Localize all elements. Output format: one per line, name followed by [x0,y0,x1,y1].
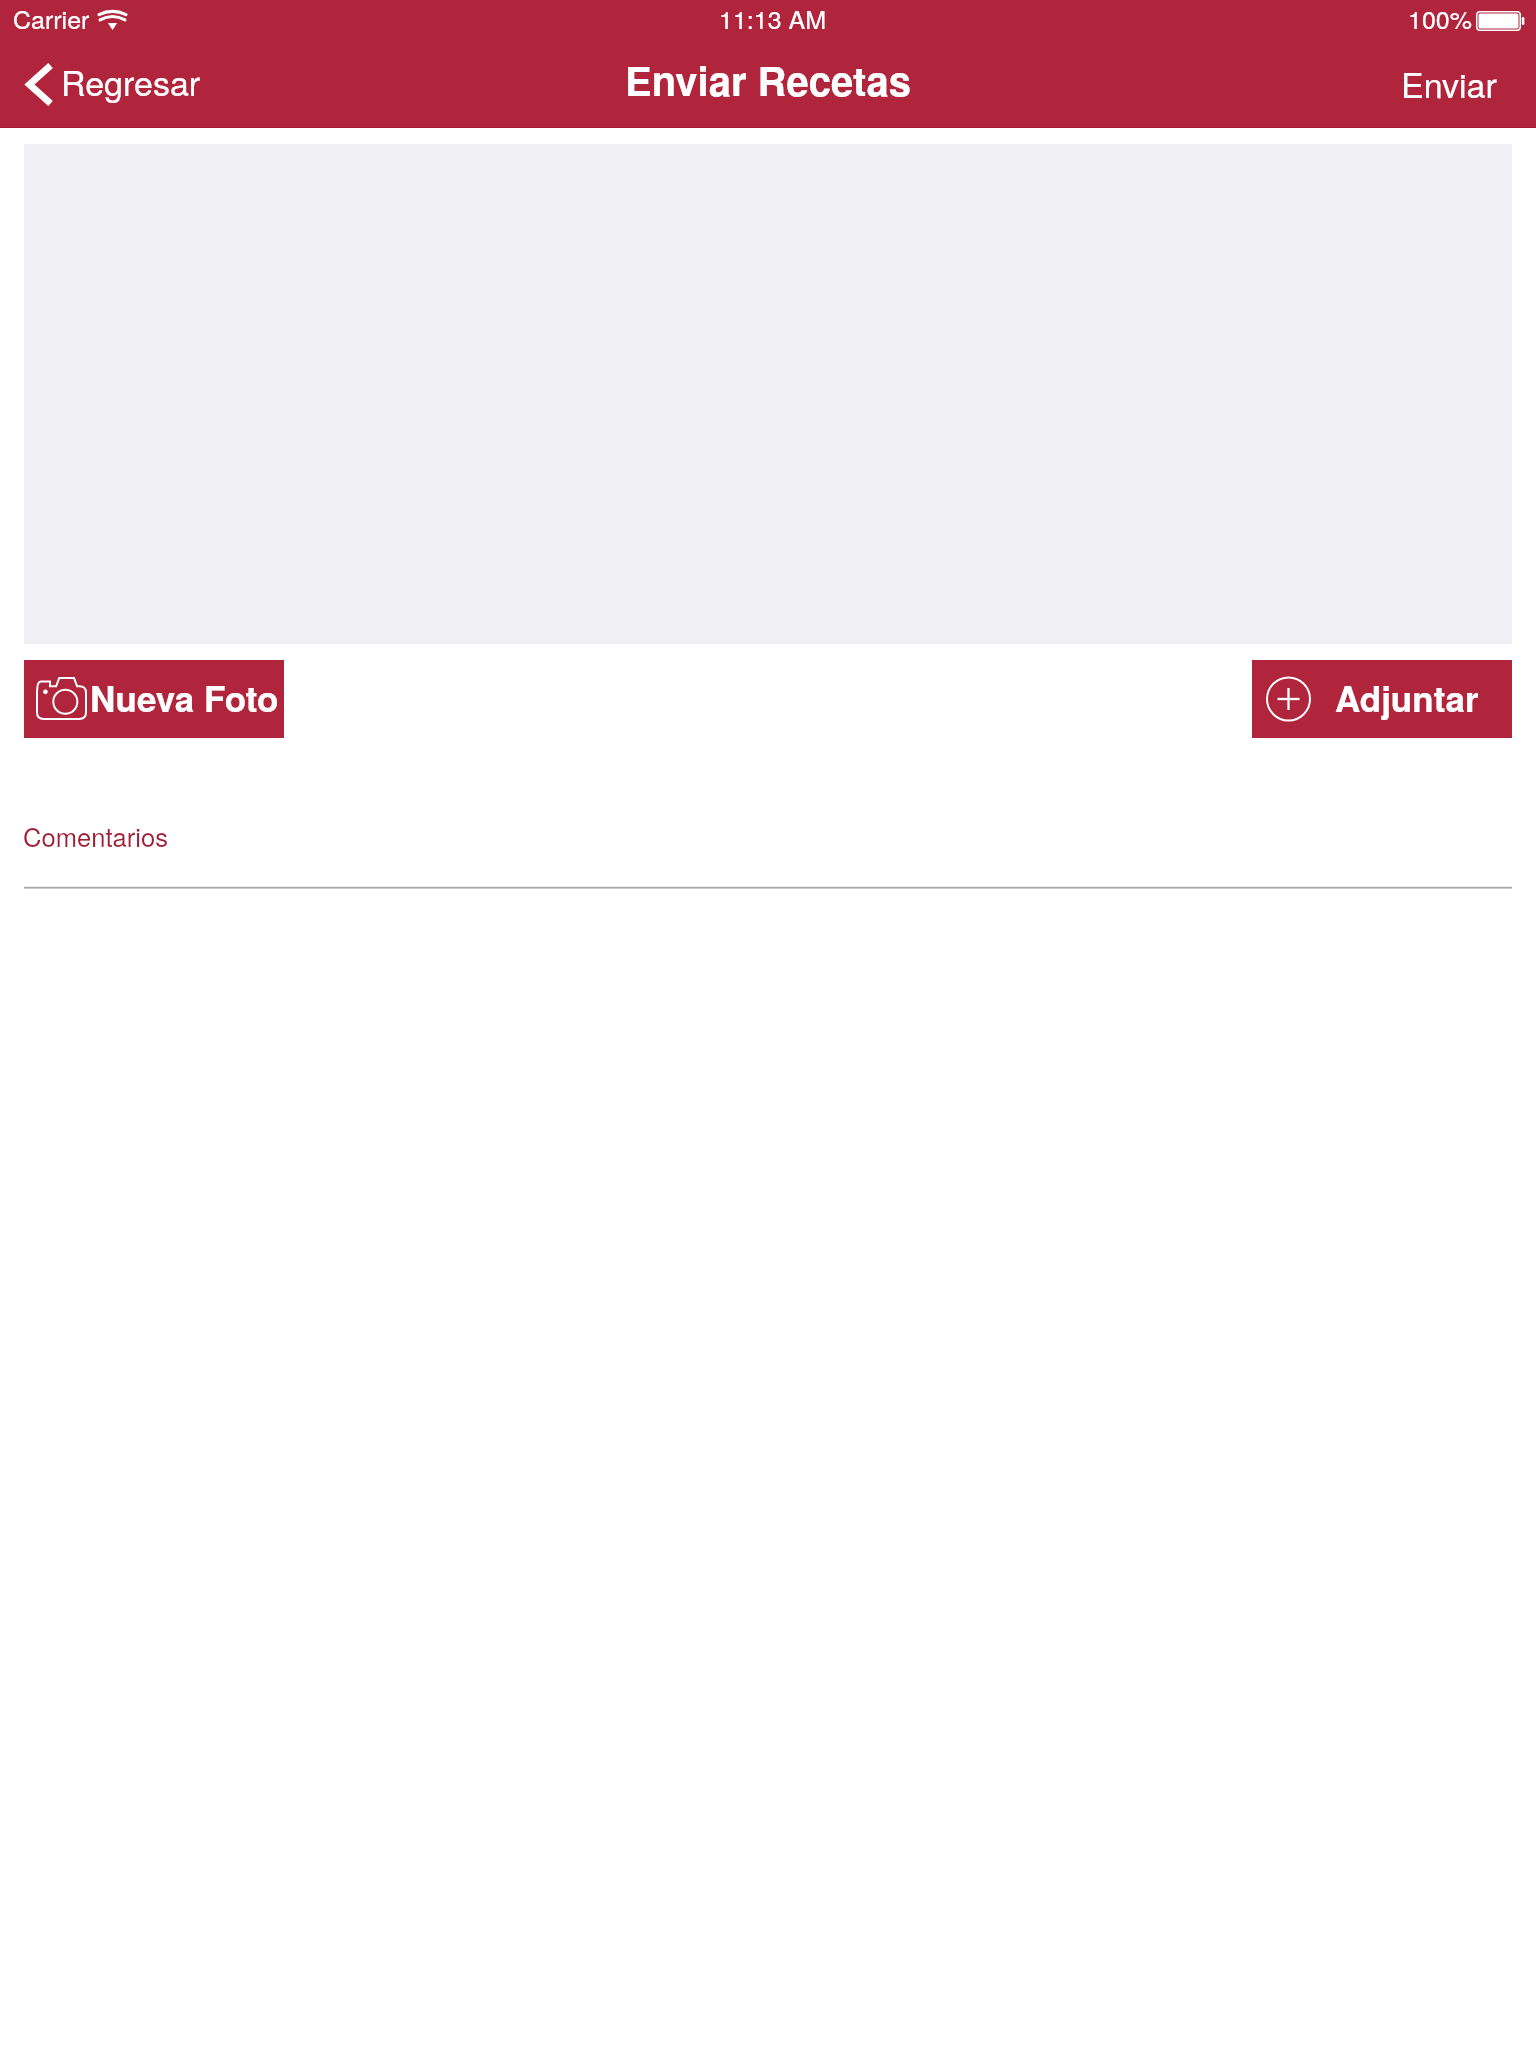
other: Battery [1476,11,1526,31]
staticText: Enviar Recetas [625,51,911,108]
button[interactable]: Adjuntar [1252,660,1512,738]
other: Wi-Fi [100,10,125,30]
staticText: 11:13 AM [719,0,827,36]
staticText: Regresar [61,57,201,106]
button[interactable]: Enviar [1380,50,1516,110]
staticText: Comentarios [23,818,169,855]
other: Adjuntar [1266,676,1311,722]
staticText: Adjuntar [1335,673,1479,723]
button[interactable]: Back [10,50,220,110]
button[interactable]: Nueva Foto [24,660,284,738]
other: Back [26,62,54,107]
staticText: Enviar [1401,59,1497,108]
other: Nueva Foto [36,677,87,720]
staticText: 100% [1408,0,1472,36]
staticText: Nueva Foto [90,673,279,723]
staticText: Carrier [13,0,90,36]
